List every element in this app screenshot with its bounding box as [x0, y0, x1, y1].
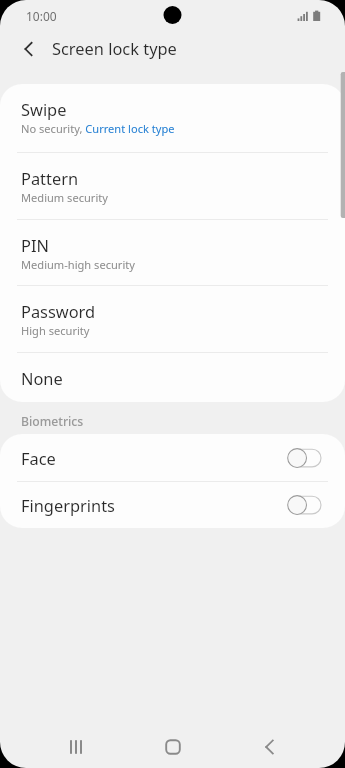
staticText: Medium security	[21, 190, 108, 205]
staticText: Face	[21, 447, 56, 469]
button[interactable]: None	[0, 353, 345, 402]
staticText: No security, Current lock type	[21, 121, 175, 136]
staticText: Swipe	[21, 98, 67, 120]
staticText: None	[21, 367, 63, 389]
button[interactable]: Face	[0, 434, 345, 482]
staticText: Medium-high security	[21, 257, 135, 272]
button[interactable]: Password	[0, 286, 345, 353]
staticText: Biometrics	[21, 413, 84, 430]
button[interactable]: Fingerprints	[0, 482, 345, 528]
button[interactable]: Back	[0, 32, 44, 68]
button[interactable]: Back	[241, 727, 297, 767]
staticText: Fingerprints	[21, 494, 115, 516]
staticText: 10:00	[26, 8, 57, 24]
button[interactable]: PIN	[0, 220, 345, 286]
staticText: PIN	[21, 234, 49, 256]
staticText: Password	[21, 300, 96, 322]
button[interactable]: Pattern	[0, 153, 345, 220]
staticText: Screen lock type	[52, 37, 177, 59]
staticText: High security	[21, 323, 90, 338]
staticText: Pattern	[21, 167, 79, 189]
button[interactable]: Recent apps	[48, 727, 104, 767]
button[interactable]: Swipe	[0, 84, 345, 153]
button[interactable]: Home	[145, 727, 201, 767]
